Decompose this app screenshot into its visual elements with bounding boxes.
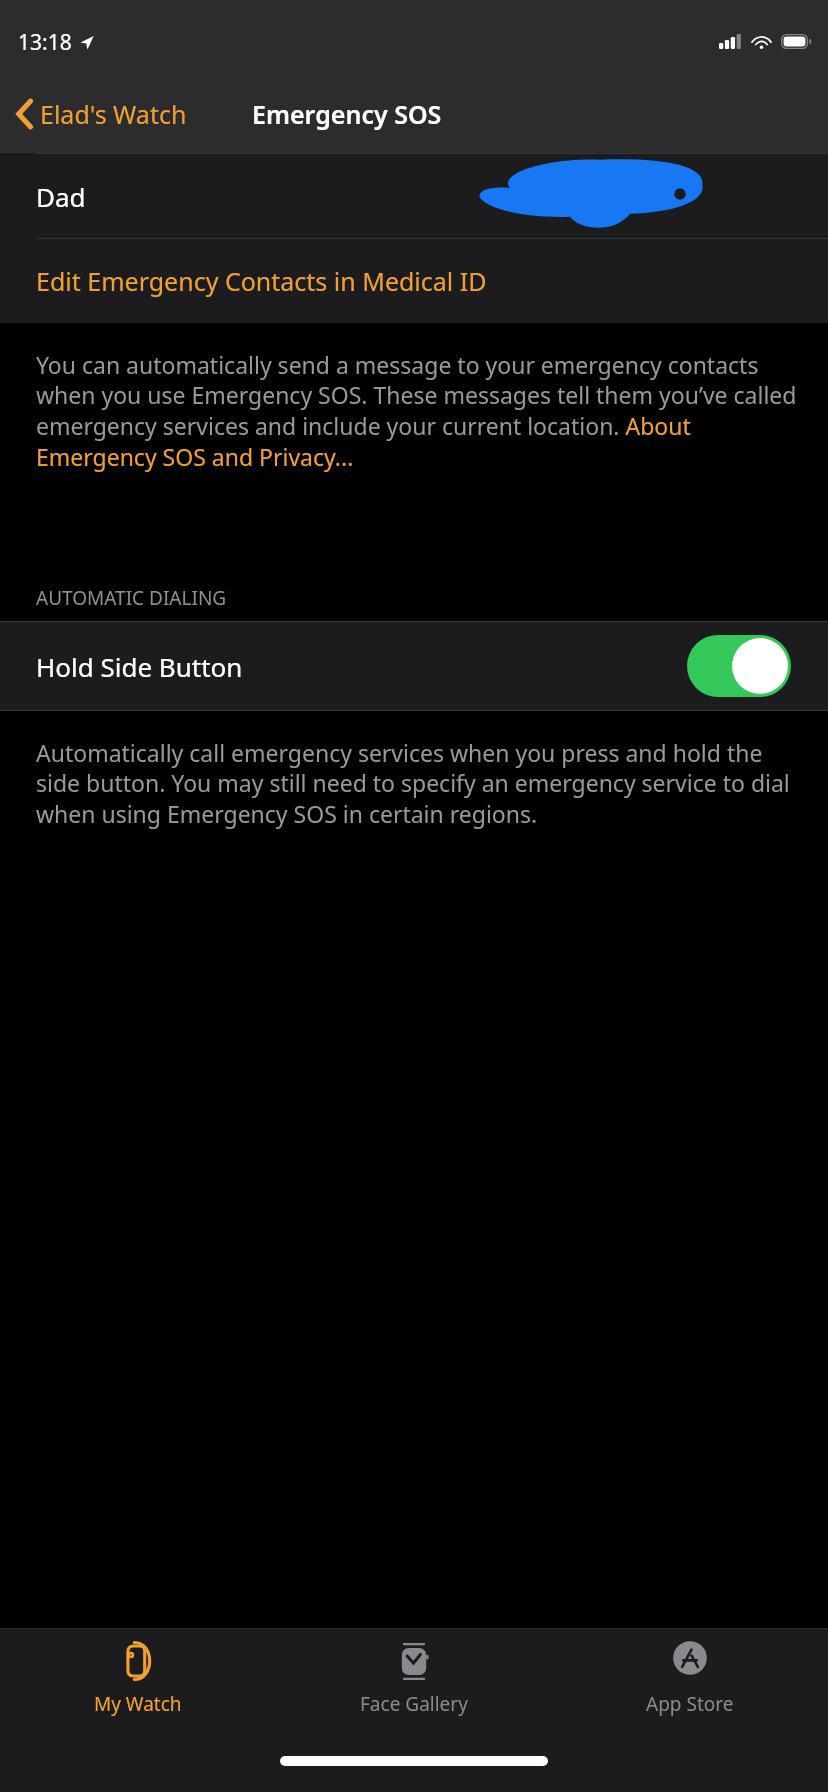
staticText: Dad xyxy=(36,179,86,214)
button[interactable]: Dad xyxy=(0,153,828,239)
button[interactable]: Face Gallery xyxy=(276,1629,552,1750)
staticText: You can automatically send a message to … xyxy=(36,349,798,473)
button[interactable]: Elad's Watch xyxy=(0,91,195,137)
button[interactable]: Hold Side Button toggle, on xyxy=(687,635,791,697)
staticText: 13:18 xyxy=(18,28,72,57)
staticText: My Watch xyxy=(94,1691,182,1717)
button[interactable]: My Watch xyxy=(0,1629,276,1750)
staticText: AUTOMATIC DIALING xyxy=(36,585,227,611)
staticText: Emergency SOS xyxy=(252,97,442,131)
staticText: Elad's Watch xyxy=(40,97,187,131)
button[interactable]: Hold Side Button xyxy=(0,621,828,711)
button[interactable]: Edit Emergency Contacts in Medical ID xyxy=(0,239,828,323)
staticText: Hold Side Button xyxy=(36,649,243,684)
staticText: App Store xyxy=(646,1691,734,1717)
staticText: Edit Emergency Contacts in Medical ID xyxy=(36,264,487,298)
button[interactable]: App Store xyxy=(552,1629,828,1750)
staticText: Face Gallery xyxy=(360,1691,468,1717)
staticText: Automatically call emergency services wh… xyxy=(36,737,798,830)
